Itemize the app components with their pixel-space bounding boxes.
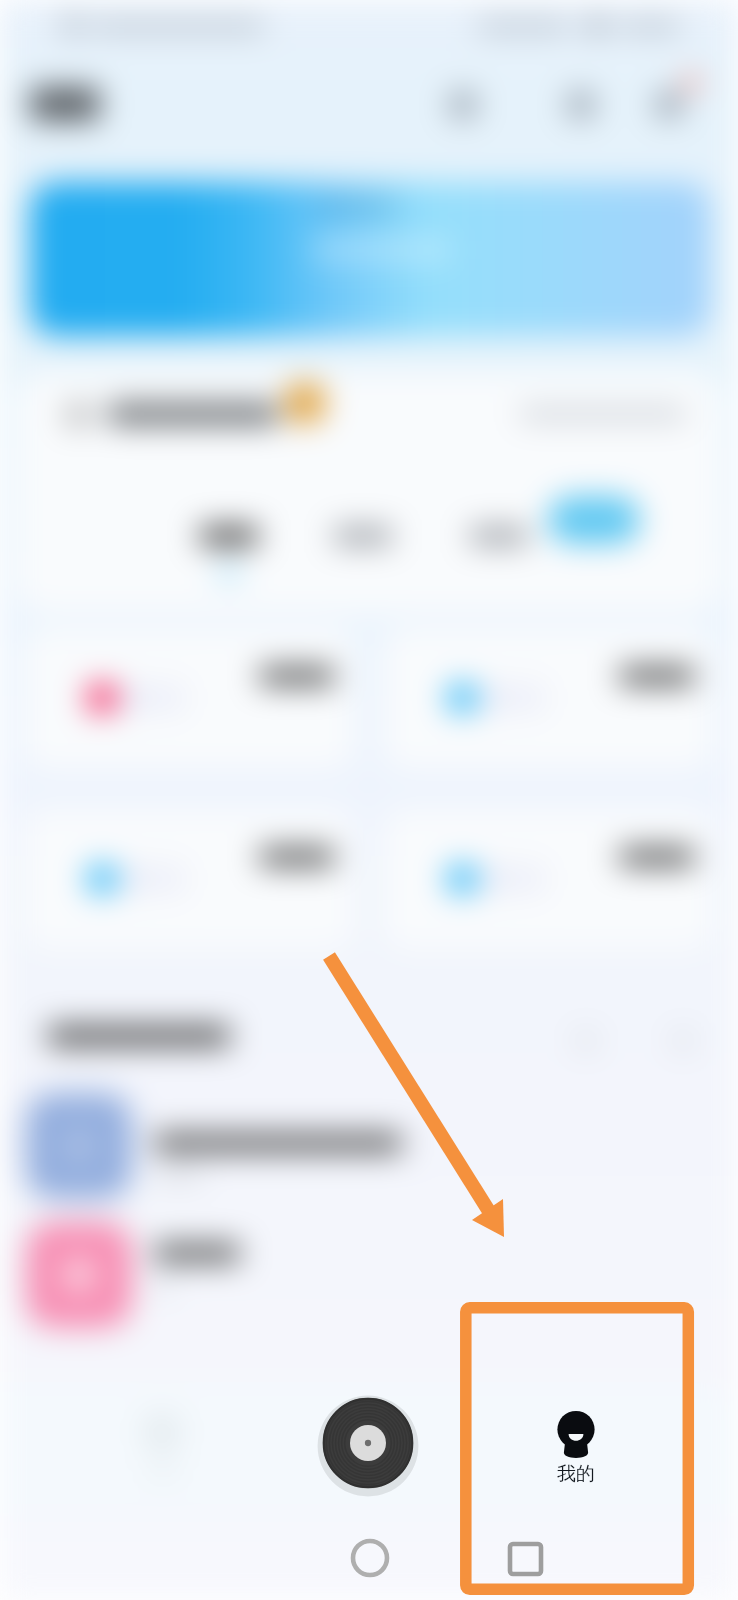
button[interactable] bbox=[548, 496, 640, 544]
button[interactable] bbox=[30, 182, 710, 336]
button[interactable]: Now playing bbox=[320, 1395, 416, 1491]
button[interactable] bbox=[30, 87, 100, 121]
button[interactable] bbox=[334, 527, 392, 597]
button[interactable] bbox=[384, 628, 714, 768]
button[interactable] bbox=[200, 527, 258, 597]
button[interactable] bbox=[26, 1093, 716, 1201]
button[interactable] bbox=[26, 1222, 716, 1330]
button[interactable] bbox=[24, 809, 354, 949]
button[interactable]: 我的 bbox=[478, 1388, 674, 1510]
button[interactable] bbox=[470, 527, 528, 597]
staticText: 我的 bbox=[557, 1462, 595, 1486]
button[interactable] bbox=[384, 809, 714, 949]
button[interactable] bbox=[24, 628, 354, 768]
